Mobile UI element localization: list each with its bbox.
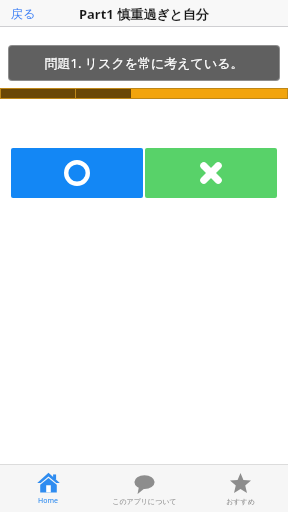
button[interactable]: はい xyxy=(11,148,143,198)
button[interactable]: いいえ xyxy=(145,148,277,198)
staticText: このアプリについて xyxy=(112,497,177,506)
staticText: Home xyxy=(38,496,58,506)
staticText: 戻る xyxy=(11,6,36,21)
button[interactable]: Home xyxy=(0,465,96,512)
button[interactable]: おすすめ xyxy=(192,465,288,512)
staticText: おすすめ xyxy=(226,497,255,506)
staticText: 問題1. リスクを常に考えている。 xyxy=(44,54,244,72)
staticText: Part1 慎重過ぎと自分 xyxy=(79,5,209,23)
button[interactable]: 戻る xyxy=(8,3,39,24)
button[interactable]: このアプリについて xyxy=(96,465,192,512)
